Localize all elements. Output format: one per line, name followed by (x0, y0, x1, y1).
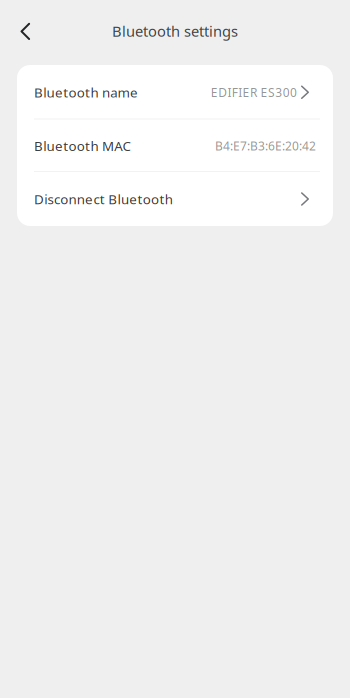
staticText: Bluetooth MAC (34, 137, 131, 155)
button[interactable]: Bluetooth MAC (17, 119, 333, 172)
staticText: B4:E7:B3:6E:20:42 (215, 138, 316, 154)
staticText: Bluetooth name (34, 83, 138, 101)
staticText: EDIFIER ES300 (211, 84, 297, 100)
button[interactable]: Bluetooth name (17, 65, 333, 119)
button[interactable]: Disconnect Bluetooth (17, 172, 333, 226)
staticText: Bluetooth settings (112, 21, 238, 41)
staticText: Disconnect Bluetooth (34, 190, 173, 208)
button[interactable]: Back (0, 0, 42, 65)
